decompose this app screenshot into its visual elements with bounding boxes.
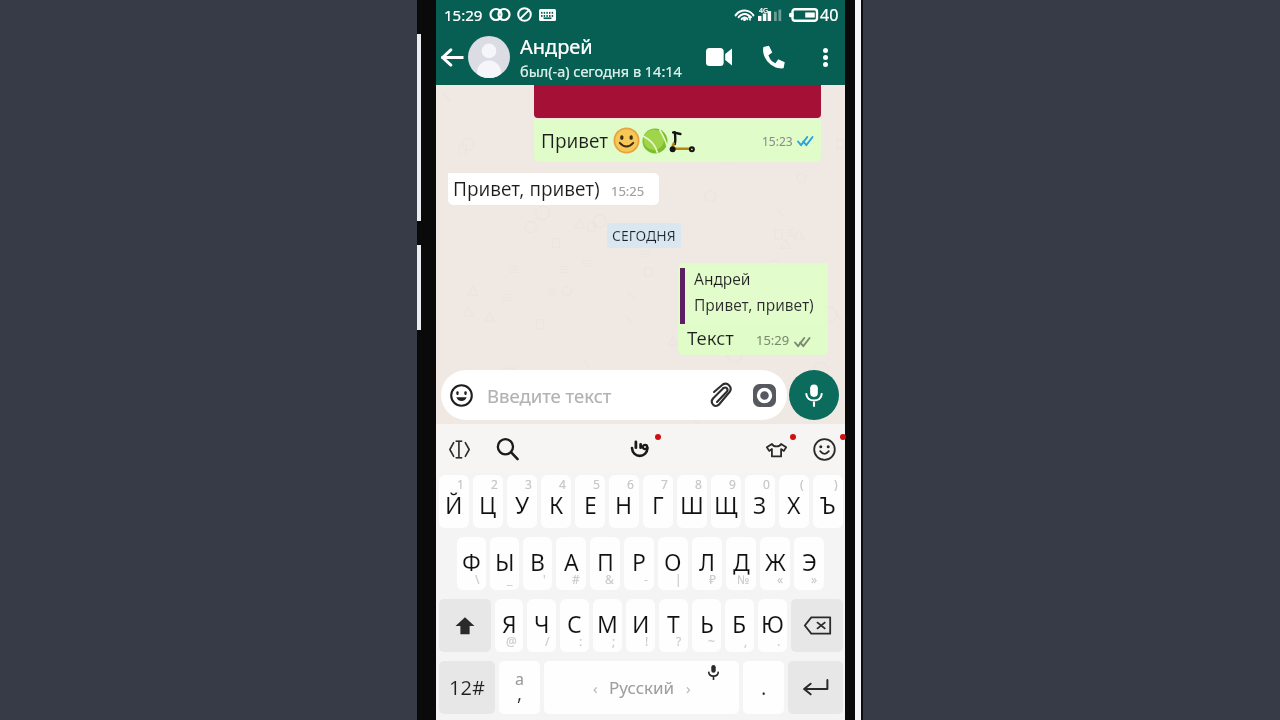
button[interactable]: / [527,599,556,652]
staticText: С [567,608,582,639]
button[interactable]: 9 [711,475,741,528]
button[interactable]: ~ [692,599,721,652]
button[interactable]: Backspace [791,599,843,652]
button[interactable]: ( [779,475,809,528]
button[interactable]: Voice call [750,29,808,85]
button[interactable]: Keyboard themes [759,432,793,466]
button[interactable]: ₽ [692,537,722,590]
staticText: был(-а) сегодня в 14:14 [520,61,682,81]
button[interactable]: Move cursor [442,432,476,466]
button[interactable]: . [758,599,787,652]
staticText: - [644,571,648,587]
button[interactable]: 1 [439,475,469,528]
button[interactable]: 7 [643,475,673,528]
button[interactable]: : [560,599,589,652]
staticText: ₽ [709,571,716,587]
button[interactable]: Period [743,661,784,714]
button[interactable]: Comma [499,661,540,714]
staticText: Р [632,546,646,577]
staticText: ! [645,633,649,649]
staticText: \ [475,571,480,587]
staticText: , [517,680,523,706]
button[interactable]: 0 [745,475,775,528]
button[interactable]: ' [523,537,552,590]
staticText: Н [615,489,633,520]
button[interactable]: Contact photo [468,36,510,78]
button[interactable]: ? [659,599,688,652]
staticText: Й [445,489,463,520]
staticText: . [761,674,767,701]
button[interactable]: Enter [788,661,843,714]
staticText: ) [834,476,838,492]
button[interactable]: 4 [541,475,571,528]
button[interactable]: Handwriting [624,432,658,466]
staticText: 15:29 [756,331,790,349]
button[interactable]: Camera [750,381,778,409]
button[interactable]: 2 [473,475,503,528]
staticText: В [530,546,545,577]
button[interactable]: Shift [439,599,491,652]
staticText: 15:29 [444,5,483,25]
staticText: Ы [495,546,515,577]
staticText: 0 [763,476,770,492]
button[interactable]: Emoji [807,432,841,466]
staticText: Ж [765,546,786,577]
button[interactable]: - [624,537,654,590]
staticText: 15:23 [762,133,793,149]
staticText: Х [787,489,801,520]
button[interactable]: » [794,537,824,590]
staticText: Привет, привет) [453,176,600,202]
staticText: К [549,489,564,520]
button[interactable]: ! [626,599,655,652]
staticText: / [545,633,550,649]
staticText: 2 [491,476,498,492]
staticText: Э [802,546,817,577]
staticText: @ [506,633,517,649]
staticText: У [515,489,530,520]
button[interactable]: \ [457,537,486,590]
button[interactable]: Record voice message [789,370,839,420]
staticText: Ч [534,608,550,639]
staticText: , [744,633,748,649]
button[interactable]: Андрей [678,263,828,355]
staticText: 9 [729,476,736,492]
button[interactable]: Привет, привет) [448,173,659,205]
button[interactable]: # [556,537,586,590]
button[interactable]: 5 [575,475,605,528]
staticText: ( [800,476,804,492]
button[interactable]: 8 [677,475,707,528]
button[interactable]: Введите текст [441,370,787,420]
button[interactable]: « [760,537,790,590]
staticText: : [579,633,583,649]
button[interactable]: Space, Russian [544,661,739,714]
staticText: Ф [462,546,481,577]
staticText: « [777,571,784,587]
button[interactable]: Привет [534,119,821,162]
button[interactable]: Video call [688,29,750,85]
staticText: Ю [761,608,784,639]
button[interactable]: № [726,537,756,590]
button[interactable]: _ [490,537,519,590]
staticText: № [737,571,750,587]
button[interactable]: More options [808,29,842,85]
button[interactable]: Back [436,29,468,85]
button[interactable]: @ [495,599,523,652]
button[interactable]: | [658,537,688,590]
staticText: . [777,633,781,649]
staticText: 15:25 [611,182,645,200]
button[interactable]: & [590,537,620,590]
staticText: ~ [708,633,715,649]
staticText: Щ [714,489,738,520]
button[interactable]: ) [813,475,843,528]
button[interactable]: Numbers and symbols [439,661,495,714]
staticText: Я [502,608,517,639]
button[interactable]: , [725,599,754,652]
staticText: П [597,546,614,577]
staticText: | [675,571,682,587]
button[interactable]: 6 [609,475,639,528]
button[interactable]: Search [490,432,524,466]
button[interactable]: ; [593,599,622,652]
staticText: Д [733,546,750,577]
button[interactable]: 3 [507,475,537,528]
button[interactable]: Attach file [706,380,736,410]
